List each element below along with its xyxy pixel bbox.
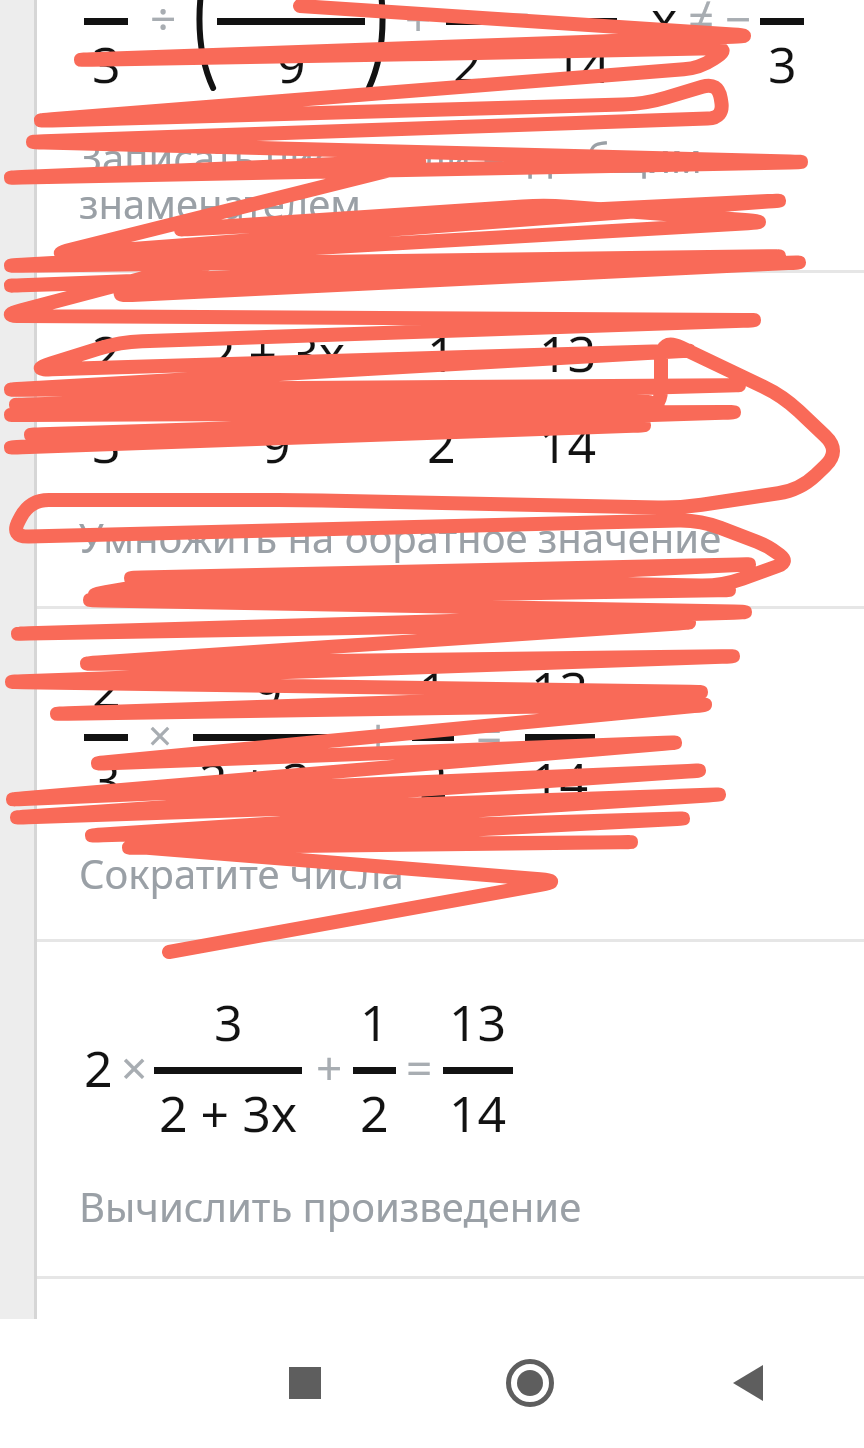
staticText: 2 — [92, 319, 121, 387]
button[interactable]: Home — [490, 1343, 570, 1423]
staticText: 2 — [453, 30, 482, 98]
staticText: 9 — [254, 655, 283, 723]
staticText: 2 + 3x — [159, 1079, 298, 1147]
staticText: 2 — [360, 1079, 389, 1147]
staticText: + — [405, 0, 432, 50]
staticText: 2 — [92, 655, 121, 723]
staticText: = — [504, 0, 531, 50]
staticText: ≠ — [688, 0, 715, 50]
staticText: Умножить на обратное значение — [79, 510, 722, 564]
button[interactable]: Recent apps — [265, 1343, 345, 1423]
staticText: 1 — [427, 319, 456, 387]
staticText: 3 — [92, 410, 121, 478]
staticText: 14 — [449, 1079, 507, 1147]
staticText: 14 — [539, 410, 597, 478]
staticText: 1 — [419, 655, 448, 723]
staticText: 13 — [449, 988, 507, 1056]
staticText: = — [476, 703, 503, 766]
staticText: 14 — [553, 30, 611, 98]
staticText: 2 + 3x — [199, 746, 338, 814]
staticText: × — [121, 1036, 148, 1099]
staticText: = — [484, 367, 511, 430]
button[interactable]: Back — [710, 1343, 790, 1423]
staticText: Сократите числа — [79, 846, 404, 900]
staticText: 2 — [419, 746, 448, 814]
staticText: 9 — [262, 410, 291, 478]
staticText: 2 + 3x — [207, 319, 346, 387]
staticText: 9 — [277, 30, 306, 98]
staticText: x — [651, 0, 678, 53]
staticText: 1 — [360, 988, 389, 1056]
staticText: ÷ — [152, 367, 179, 430]
staticText: Вычислить произведение — [79, 1179, 582, 1233]
staticText: 3 — [92, 746, 121, 814]
staticText: × — [148, 706, 173, 763]
staticText: 2 — [84, 1034, 113, 1102]
staticText: 3 — [768, 30, 797, 98]
staticText: 13 — [531, 655, 589, 723]
staticText: 2 + 3x — [222, 0, 361, 7]
staticText: 14 — [531, 746, 589, 814]
staticText: = — [406, 1036, 433, 1099]
staticText: 2 — [427, 410, 456, 478]
staticText: 3 — [214, 988, 243, 1056]
staticText: 3 — [92, 30, 121, 98]
staticText: + — [373, 367, 400, 430]
staticText: − — [725, 0, 752, 50]
staticText: Записать числители над общим знаменателе… — [79, 130, 702, 231]
staticText: + — [365, 703, 392, 766]
staticText: ÷ — [150, 0, 177, 50]
staticText: + — [316, 1036, 343, 1099]
staticText: 13 — [539, 319, 597, 387]
